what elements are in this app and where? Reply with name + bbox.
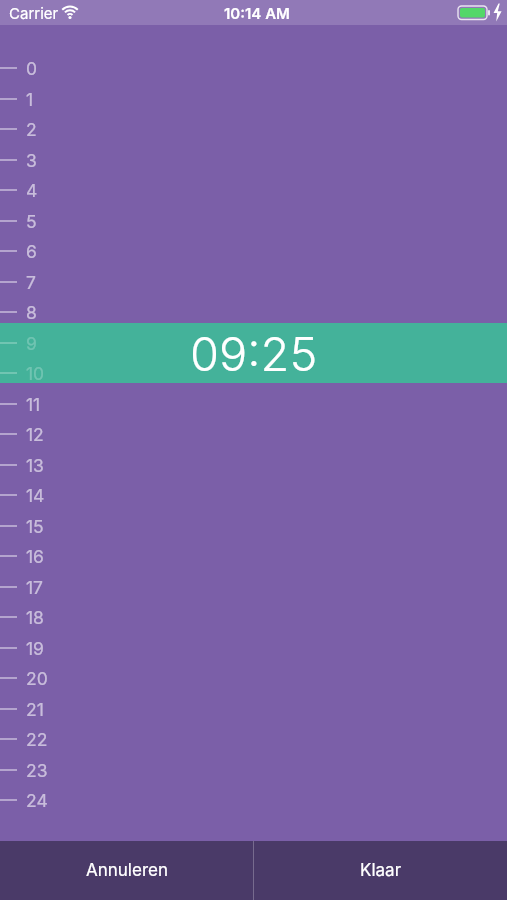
staticText: 20 [26,668,48,689]
staticText: 23 [26,760,48,781]
staticText: 7 [26,272,36,293]
staticText: 3 [26,150,37,171]
staticText: 10:14 AM [224,4,290,22]
staticText: 18 [26,607,44,628]
staticText: 15 [26,516,44,537]
staticText: 09:25 [190,325,318,382]
button[interactable]: Klaar [254,841,507,900]
staticText: 11 [26,394,41,415]
staticText: 2 [26,119,37,140]
staticText: 9 [26,333,37,354]
staticText: 8 [26,302,37,323]
staticText: Carrier [9,4,59,22]
staticText: Annuleren [86,860,168,881]
staticText: 6 [26,241,37,262]
staticText: Klaar [360,860,402,881]
staticText: 1 [26,89,34,110]
staticText: 21 [26,699,44,720]
button[interactable]: Annuleren [0,841,253,900]
staticText: 0 [26,58,38,79]
staticText: 17 [26,577,44,598]
staticText: 5 [26,211,37,232]
staticText: 16 [26,546,44,567]
staticText: 13 [26,455,44,476]
staticText: 12 [26,424,44,445]
staticText: 24 [26,790,48,811]
staticText: 4 [26,180,38,201]
staticText: 22 [26,729,48,750]
staticText: 14 [26,485,45,506]
staticText: 10 [26,363,45,384]
staticText: 19 [26,638,44,659]
